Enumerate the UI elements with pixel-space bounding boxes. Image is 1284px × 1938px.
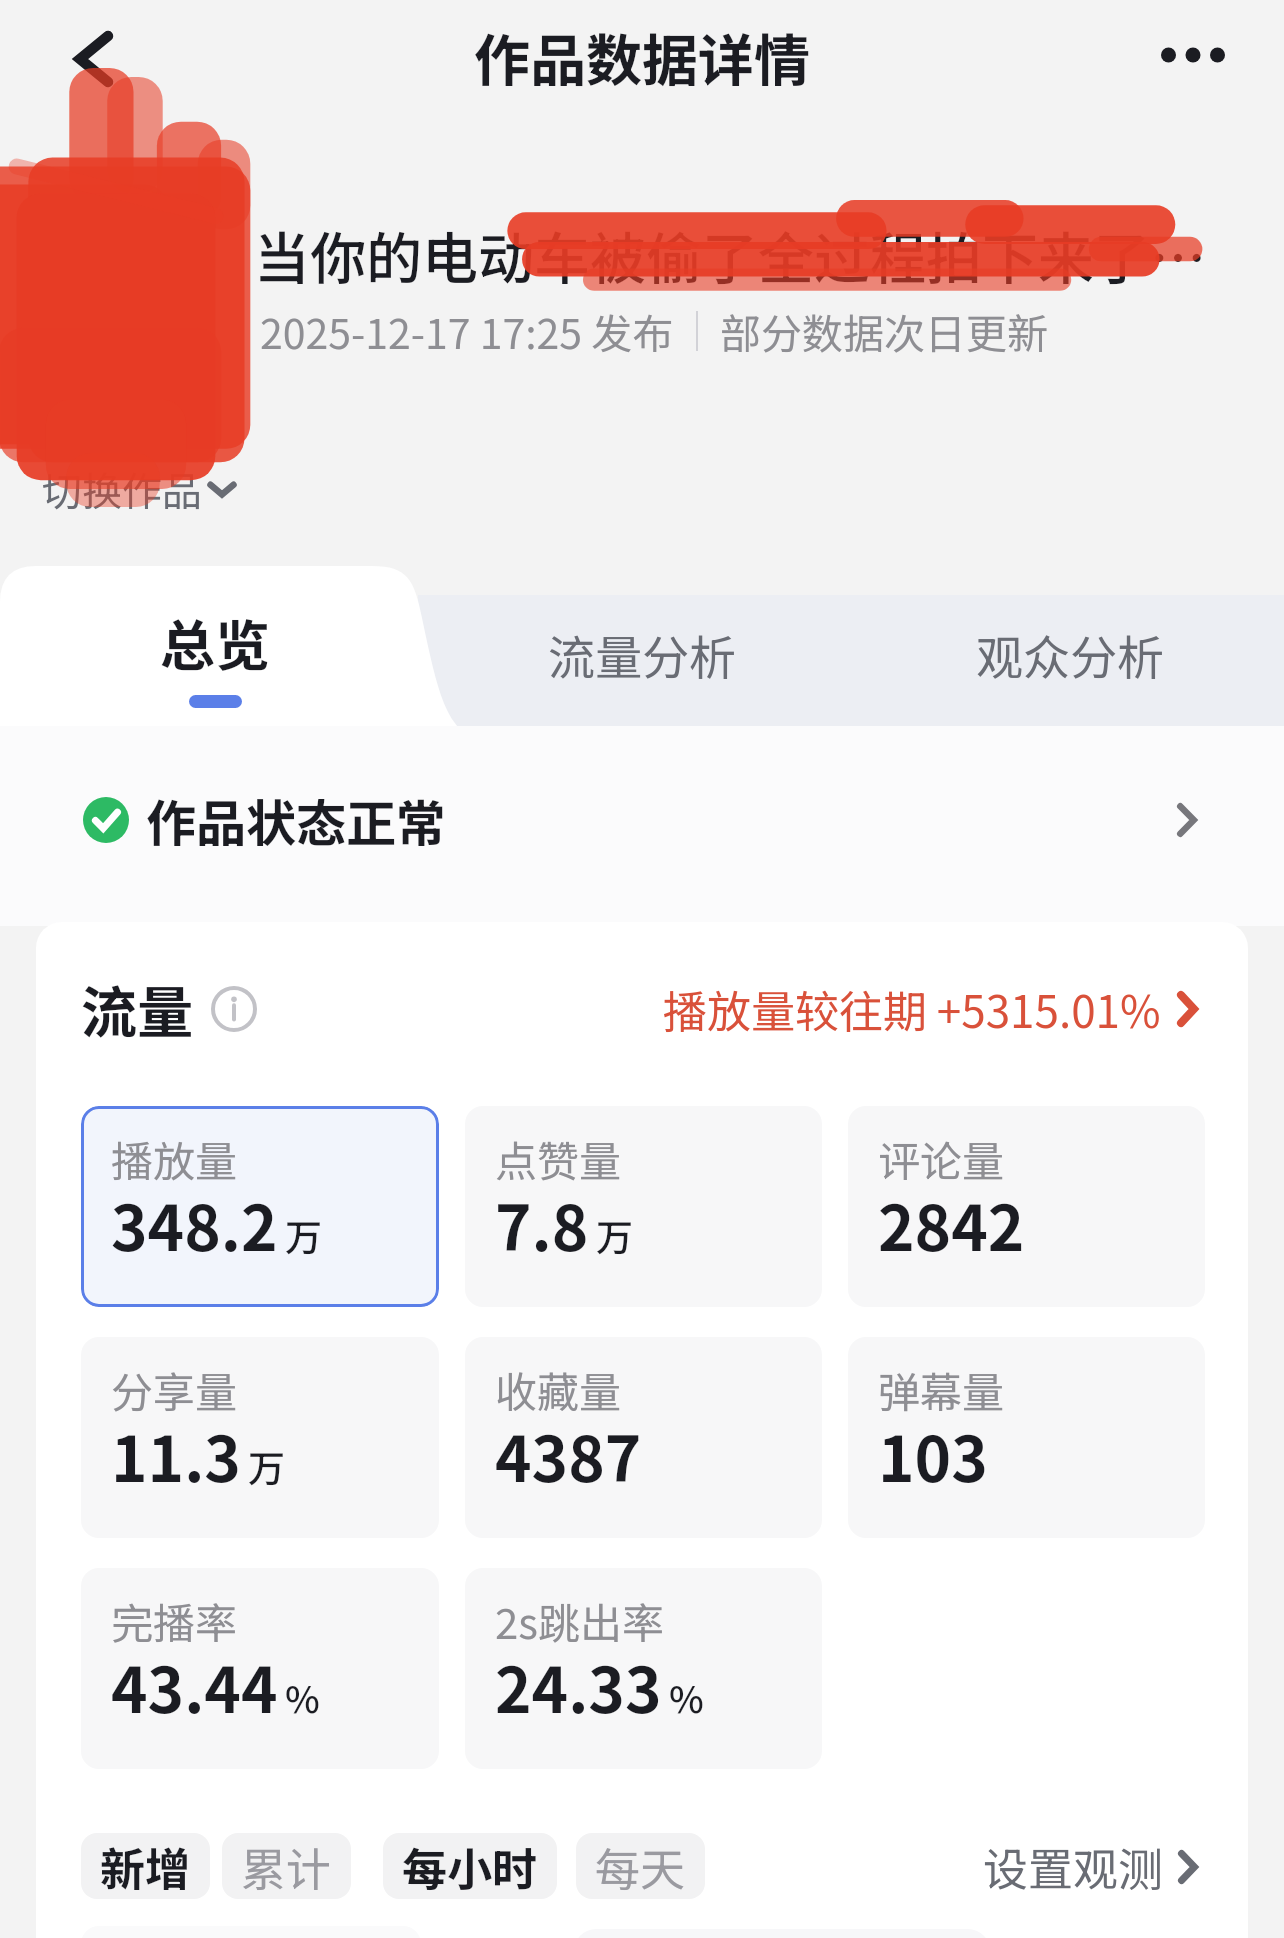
button[interactable]: Back bbox=[44, 14, 144, 104]
button[interactable]: More options bbox=[1136, 15, 1250, 95]
staticText: 作品数据详情 bbox=[0, 16, 1284, 97]
button[interactable]: 观众分析 bbox=[856, 588, 1284, 720]
button[interactable]: 设置观测 bbox=[983, 1834, 1198, 1899]
staticText: 每天 bbox=[595, 1834, 686, 1899]
staticText: 流量 bbox=[81, 968, 193, 1049]
staticText: 万 bbox=[596, 1208, 633, 1262]
staticText: 收藏量 bbox=[495, 1359, 622, 1420]
staticText: 24.33 bbox=[495, 1641, 662, 1731]
staticText: 流量分析 bbox=[548, 620, 736, 688]
button[interactable]: 作品状态正常 bbox=[0, 745, 1284, 895]
staticText: 播放量 bbox=[111, 1128, 238, 1189]
staticText: 43.44 bbox=[111, 1641, 278, 1731]
button[interactable]: 流量分析 bbox=[428, 588, 856, 720]
button[interactable]: 2s跳出率 bbox=[465, 1568, 822, 1769]
button[interactable]: 收藏量 bbox=[465, 1337, 822, 1538]
staticText: 2025-12-17 17:25 发布 bbox=[260, 301, 674, 360]
staticText: 点赞量 bbox=[495, 1128, 622, 1189]
button[interactable]: 每天 bbox=[576, 1833, 705, 1899]
staticText: 播放量较往期 +5315.01% bbox=[663, 977, 1161, 1041]
staticText: 评论量 bbox=[878, 1128, 1005, 1189]
staticText: 新增 bbox=[100, 1834, 191, 1899]
staticText: 2s跳出率 bbox=[495, 1590, 664, 1651]
button[interactable]: 总览 bbox=[0, 566, 428, 766]
staticText: 2842 bbox=[878, 1179, 1025, 1269]
staticText: 7.8 bbox=[495, 1179, 589, 1269]
button[interactable]: 分享量 bbox=[81, 1337, 439, 1538]
staticText: 切换作品 bbox=[42, 460, 202, 518]
button[interactable]: 点赞量 bbox=[465, 1106, 822, 1307]
staticText: 累计 bbox=[241, 1834, 332, 1899]
button[interactable]: 完播率 bbox=[81, 1568, 439, 1769]
staticText: % bbox=[669, 1670, 704, 1724]
staticText: 作品状态正常 bbox=[146, 784, 446, 856]
button[interactable]: 播放量较往期 +5315.01% bbox=[663, 977, 1198, 1041]
staticText: 完播率 bbox=[111, 1590, 238, 1651]
button[interactable]: 每小时 bbox=[383, 1833, 557, 1899]
staticText: 348.2 bbox=[111, 1179, 278, 1269]
button[interactable]: 切换作品 bbox=[42, 460, 240, 518]
button[interactable]: 累计 bbox=[222, 1833, 351, 1899]
staticText: 当你的电动车被偷了全过程拍下来了… bbox=[254, 214, 1209, 295]
button[interactable]: 播放量 bbox=[81, 1106, 439, 1307]
staticText: 4387 bbox=[495, 1410, 642, 1500]
staticText: 分享量 bbox=[111, 1359, 238, 1420]
staticText: 每小时 bbox=[402, 1834, 538, 1899]
button[interactable]: 新增 bbox=[81, 1833, 210, 1899]
staticText: 部分数据次日更新 bbox=[720, 301, 1048, 360]
staticText: 设置观测 bbox=[983, 1834, 1164, 1899]
staticText: 万 bbox=[285, 1208, 322, 1262]
button[interactable]: 评论量 bbox=[848, 1106, 1205, 1307]
staticText: 103 bbox=[878, 1410, 988, 1500]
staticText: 弹幕量 bbox=[878, 1359, 1005, 1420]
staticText: 总览 bbox=[160, 602, 271, 682]
staticText: % bbox=[285, 1670, 320, 1724]
staticText: 观众分析 bbox=[976, 620, 1164, 688]
staticText: 万 bbox=[248, 1439, 285, 1493]
staticText: 11.3 bbox=[111, 1410, 241, 1500]
button[interactable]: 弹幕量 bbox=[848, 1337, 1205, 1538]
